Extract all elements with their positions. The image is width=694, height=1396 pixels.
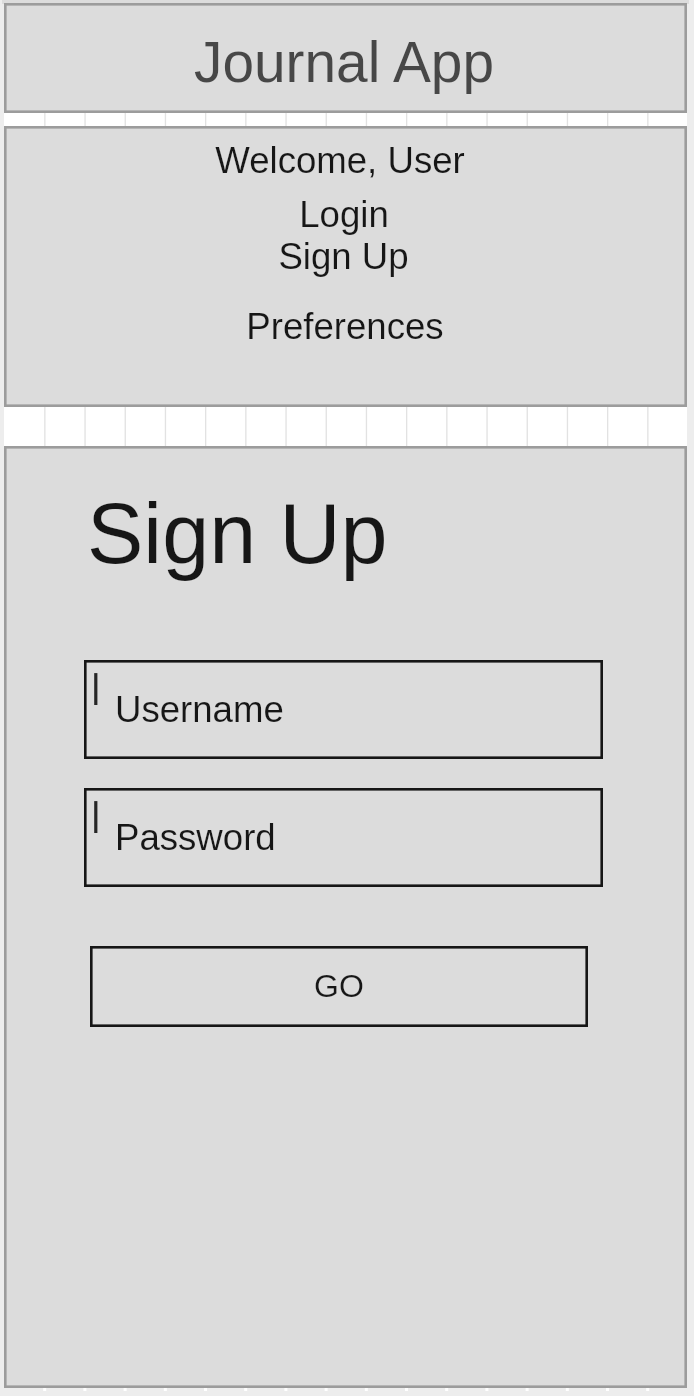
staticText: Password [115,817,276,858]
staticText: Sign Up [87,487,388,581]
button[interactable]: GO [90,946,588,1027]
button[interactable]: Username [84,660,603,759]
button[interactable]: Password [84,788,603,887]
button[interactable]: Preferences [3,306,686,348]
staticText: Welcome, User [215,140,465,181]
button[interactable]: Sign Up [2,236,685,278]
staticText: Sign Up [278,236,409,277]
button[interactable]: Login [2,194,685,236]
staticText: Journal App [194,31,494,94]
staticText: Login [299,194,389,235]
staticText: Username [115,689,284,730]
staticText: Preferences [246,306,444,347]
staticText: GO [314,968,364,1004]
